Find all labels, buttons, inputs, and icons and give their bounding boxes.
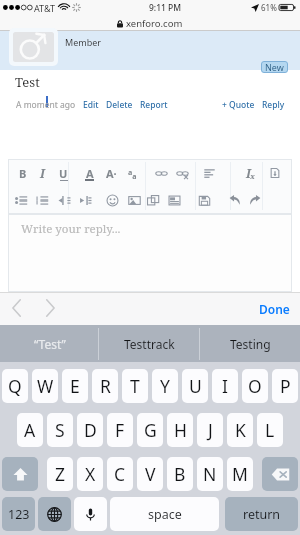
- button[interactable]: C: [107, 457, 133, 491]
- staticText: C: [114, 462, 126, 486]
- staticText: G: [144, 418, 157, 442]
- staticText: 123: [8, 506, 30, 523]
- button[interactable]: E: [62, 369, 88, 403]
- staticText: Edit: [83, 99, 99, 111]
- button[interactable]: Italic: [32, 162, 53, 184]
- button[interactable]: Y: [152, 369, 178, 403]
- staticText: U: [59, 166, 68, 181]
- button[interactable]: “Test”: [0, 325, 99, 362]
- button[interactable]: Image: [124, 189, 145, 211]
- staticText: K: [235, 418, 246, 442]
- button[interactable]: Indent: [75, 189, 96, 211]
- button[interactable]: xenforo.com: [117, 17, 183, 30]
- button[interactable]: Attachment: [164, 189, 185, 211]
- button[interactable]: A: [17, 413, 43, 447]
- staticText: Delete: [106, 99, 133, 111]
- button[interactable]: D: [77, 413, 103, 447]
- button[interactable]: Edit: [83, 99, 99, 111]
- button[interactable]: Smilies: [102, 189, 123, 211]
- button[interactable]: + Quote: [222, 99, 255, 111]
- staticText: H: [174, 418, 187, 442]
- staticText: 61%: [261, 2, 277, 13]
- button[interactable]: Alignment: [199, 162, 220, 184]
- button[interactable]: R: [92, 369, 118, 403]
- button[interactable]: Reply: [262, 99, 285, 111]
- button[interactable]: Testing: [200, 325, 300, 362]
- staticText: return: [243, 506, 281, 523]
- button[interactable]: L: [257, 413, 283, 447]
- button[interactable]: Z: [47, 457, 73, 491]
- button[interactable]: P: [272, 369, 298, 403]
- button[interactable]: Q: [2, 369, 28, 403]
- button[interactable]: Font family: [122, 162, 143, 184]
- button[interactable]: Font size: [101, 162, 122, 184]
- button[interactable]: B: [167, 457, 193, 491]
- staticText: Reply: [262, 99, 285, 111]
- staticText: A·: [106, 166, 117, 181]
- staticText: V: [145, 462, 156, 486]
- button[interactable]: Insert: [264, 162, 285, 184]
- button[interactable]: Change keyboard: [38, 497, 71, 531]
- button[interactable]: V: [137, 457, 163, 491]
- staticText: Report: [140, 99, 168, 111]
- button[interactable]: O: [242, 369, 268, 403]
- button[interactable]: Remove formatting: [240, 162, 261, 184]
- button[interactable]: Avatar: [13, 32, 54, 62]
- staticText: A: [24, 418, 36, 442]
- button[interactable]: Undo: [224, 189, 245, 211]
- button[interactable]: Delete: [106, 99, 133, 111]
- button[interactable]: New: [261, 61, 288, 73]
- staticText: ᵃₐ: [128, 166, 137, 181]
- button[interactable]: H: [167, 413, 193, 447]
- button[interactable]: return: [225, 497, 298, 531]
- button[interactable]: Insert link: [151, 162, 172, 184]
- staticText: U: [189, 374, 202, 398]
- button[interactable]: Save draft: [194, 189, 215, 211]
- button[interactable]: I: [212, 369, 238, 403]
- button[interactable]: 123: [2, 497, 35, 531]
- staticText: M: [232, 462, 248, 486]
- button[interactable]: Redo: [244, 189, 265, 211]
- button[interactable]: Report: [140, 99, 168, 111]
- button[interactable]: Bullet list: [11, 189, 32, 211]
- button[interactable]: space: [110, 497, 219, 531]
- button[interactable]: Dictation: [74, 497, 107, 531]
- button[interactable]: Outdent: [54, 189, 75, 211]
- button[interactable]: Bold: [12, 162, 33, 184]
- button[interactable]: G: [137, 413, 163, 447]
- button[interactable]: Unlink: [172, 162, 193, 184]
- staticText: R: [100, 374, 111, 398]
- button[interactable]: N: [197, 457, 223, 491]
- staticText: 9:11 PM: [149, 2, 182, 14]
- button[interactable]: Shift: [2, 457, 38, 491]
- staticText: Write your reply...: [21, 221, 121, 237]
- button[interactable]: Underline: [53, 162, 74, 184]
- button[interactable]: J: [197, 413, 223, 447]
- button[interactable]: Backspace: [262, 457, 298, 491]
- button[interactable]: Done: [249, 295, 300, 323]
- button[interactable]: S: [47, 413, 73, 447]
- staticText: Done: [259, 301, 290, 317]
- button[interactable]: Media: [143, 189, 164, 211]
- staticText: L: [265, 418, 275, 442]
- button[interactable]: Text colour: [79, 162, 100, 184]
- staticText: AT&T: [34, 2, 55, 14]
- button[interactable]: M: [227, 457, 253, 491]
- staticText: F: [115, 418, 125, 442]
- button[interactable]: T: [122, 369, 148, 403]
- button[interactable]: Previous field: [3, 295, 29, 321]
- button[interactable]: Testtrack: [99, 325, 200, 362]
- staticText: Member: [65, 36, 101, 48]
- button[interactable]: W: [32, 369, 58, 403]
- button[interactable]: Next field: [37, 295, 63, 321]
- button[interactable]: F: [107, 413, 133, 447]
- button[interactable]: X: [77, 457, 103, 491]
- staticText: J: [208, 418, 213, 442]
- staticText: Y: [160, 374, 170, 398]
- button[interactable]: K: [227, 413, 253, 447]
- staticText: D: [84, 418, 97, 442]
- button[interactable]: Numbered list: [32, 189, 53, 211]
- staticText: “Test”: [34, 336, 66, 352]
- staticText: I: [40, 165, 45, 181]
- button[interactable]: U: [182, 369, 208, 403]
